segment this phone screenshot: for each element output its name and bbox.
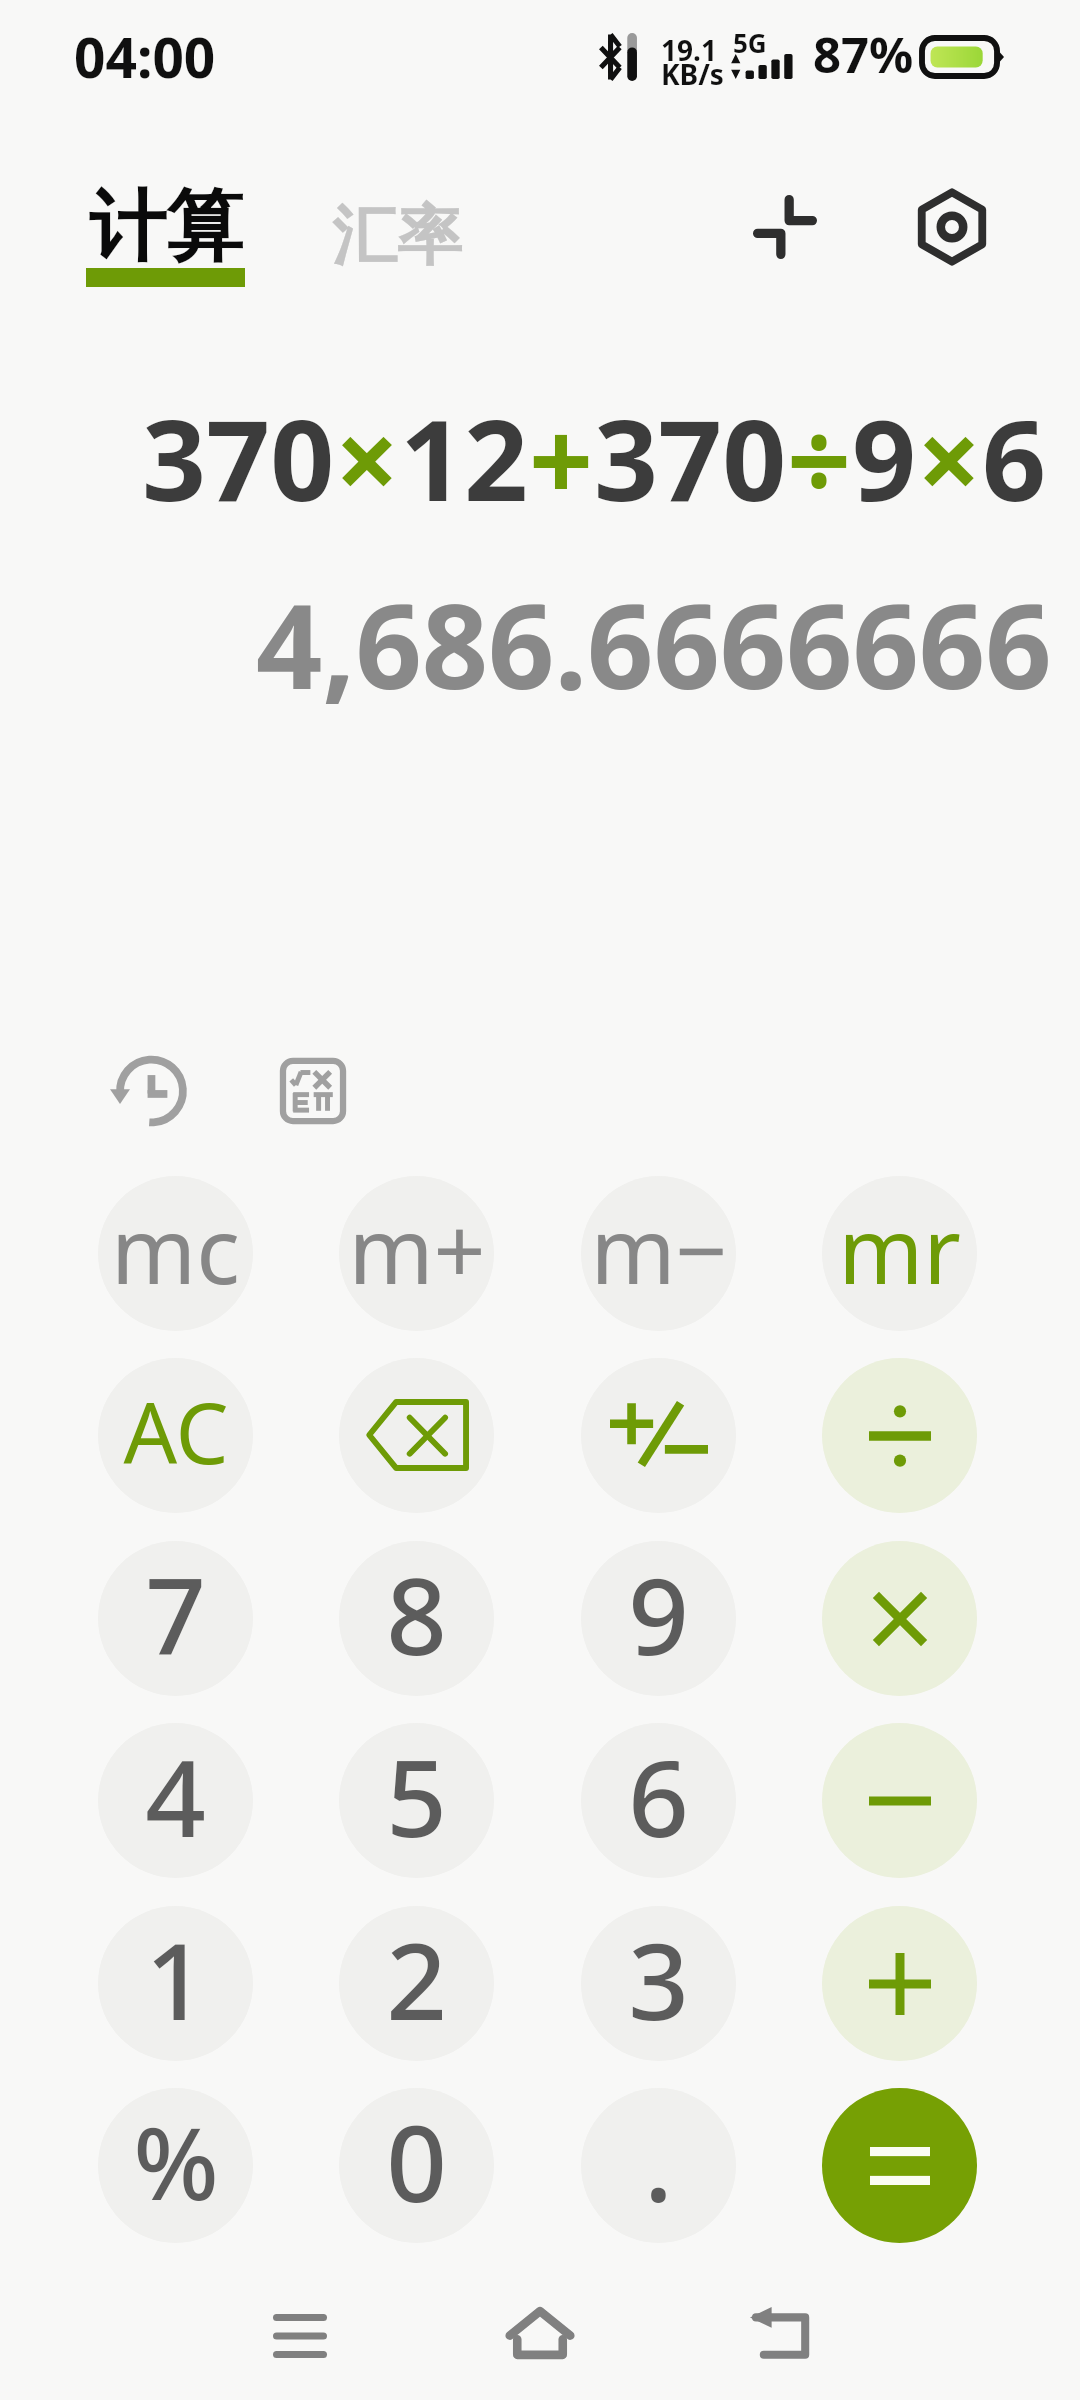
staticText: 汇率 [332, 195, 462, 277]
button[interactable]: 2 [339, 1906, 494, 2061]
button[interactable]: 3 [581, 1906, 736, 2061]
staticText: 19.1 [661, 31, 717, 69]
staticText: 370 [142, 381, 335, 534]
button[interactable]: mr [822, 1176, 977, 1331]
staticText: 4 [145, 1724, 206, 1868]
staticText: mr [838, 1187, 961, 1311]
staticText: % [133, 2093, 219, 2229]
button[interactable]: 1 [98, 1906, 253, 2061]
button[interactable]: Back [720, 2273, 840, 2393]
staticText: 04:00 [74, 19, 216, 94]
staticText: 9 [852, 381, 917, 534]
button[interactable]: 7 [98, 1541, 253, 1696]
button[interactable]: History [100, 1045, 192, 1137]
staticText: 87% [813, 21, 914, 88]
staticText: 8 [386, 1542, 447, 1686]
staticText: 5 [386, 1724, 447, 1868]
button[interactable]: 4 [98, 1723, 253, 1878]
staticText: AC [123, 1374, 229, 1488]
staticText: × [917, 381, 982, 534]
button[interactable]: Recents [240, 2276, 360, 2396]
staticText: 9 [628, 1542, 689, 1686]
button[interactable]: Scientific mode [268, 1046, 358, 1136]
button[interactable]: m+ [339, 1176, 494, 1331]
button[interactable]: Delete [339, 1358, 494, 1513]
staticText: 370 [594, 381, 787, 534]
button[interactable]: Subtract [822, 1723, 977, 1878]
staticText: 0 [386, 2089, 447, 2233]
button[interactable]: 6 [581, 1723, 736, 1878]
staticText: 1 [145, 1907, 206, 2051]
button[interactable]: Collapse [735, 177, 835, 277]
staticText: × [335, 381, 400, 534]
staticText: 3 [628, 1907, 689, 2051]
button[interactable]: Settings [900, 175, 1004, 279]
staticText: 2 [386, 1907, 447, 2051]
button[interactable]: mc [98, 1176, 253, 1331]
staticText: 4,686.6666666 [256, 565, 1052, 723]
staticText: m− [590, 1187, 728, 1311]
staticText: 计算 [89, 179, 243, 276]
button[interactable]: Divide [822, 1358, 977, 1513]
button[interactable]: Equals [822, 2088, 977, 2243]
button[interactable]: AC [98, 1358, 253, 1513]
staticText: 6 [982, 381, 1047, 534]
button[interactable]: 汇率 [332, 195, 462, 277]
button[interactable]: . [581, 2088, 736, 2243]
button[interactable]: 5 [339, 1723, 494, 1878]
staticText: . [644, 2089, 673, 2233]
button[interactable]: 0 [339, 2088, 494, 2243]
button[interactable]: 8 [339, 1541, 494, 1696]
staticText: KB/s [661, 55, 724, 93]
staticText: 5G [733, 25, 767, 60]
staticText: + [529, 381, 594, 534]
button[interactable]: Add [822, 1906, 977, 2061]
button[interactable]: Multiply [822, 1541, 977, 1696]
staticText: 7 [145, 1542, 206, 1686]
button[interactable]: % [98, 2088, 253, 2243]
button[interactable]: 计算 [89, 179, 243, 276]
staticText: m+ [348, 1187, 486, 1311]
staticText: 12 [400, 381, 529, 534]
staticText: mc [111, 1187, 240, 1311]
button[interactable]: m− [581, 1176, 736, 1331]
button[interactable]: Home [480, 2273, 600, 2393]
staticText: 6 [628, 1724, 689, 1868]
button[interactable]: 9 [581, 1541, 736, 1696]
staticText: ÷ [787, 381, 852, 534]
button[interactable]: Toggle sign [581, 1358, 736, 1513]
